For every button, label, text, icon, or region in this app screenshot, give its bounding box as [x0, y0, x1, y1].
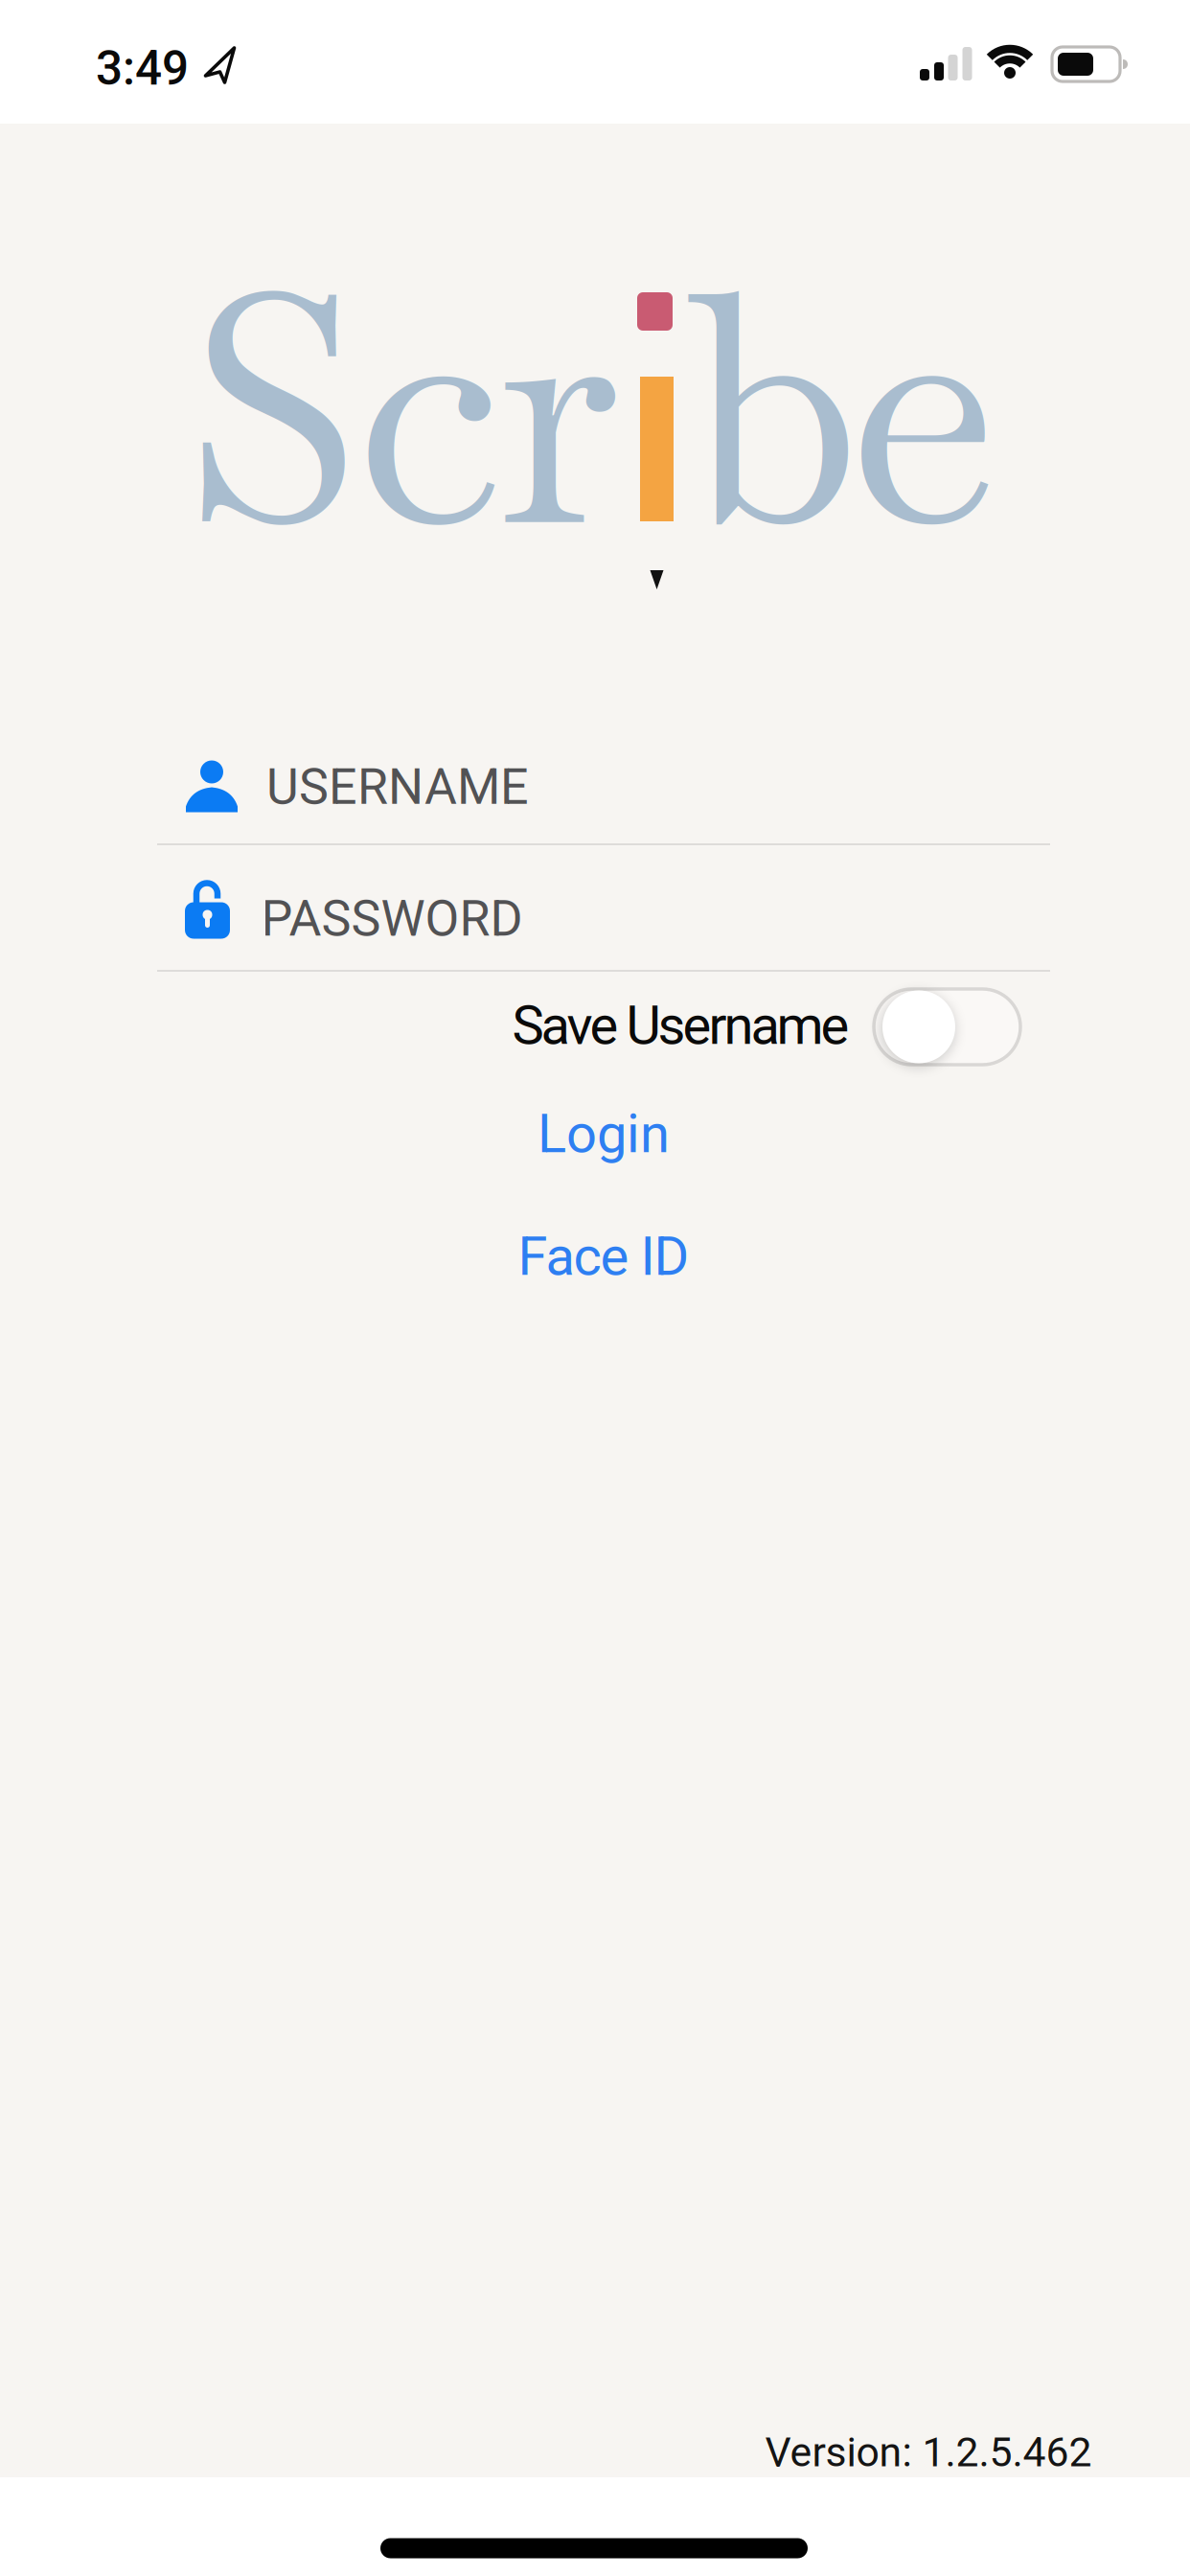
- staticText: Save Username: [512, 994, 849, 1057]
- button[interactable]: USERNAME: [157, 719, 1050, 844]
- staticText: Face ID: [518, 1225, 689, 1288]
- button[interactable]: Save Username: [508, 979, 1035, 1073]
- staticText: Login: [538, 1102, 670, 1165]
- staticText: 3:49: [96, 41, 189, 96]
- button[interactable]: Login: [518, 1091, 689, 1177]
- button[interactable]: PASSWORD: [157, 844, 1050, 971]
- button[interactable]: Face ID: [499, 1213, 709, 1299]
- staticText: be: [685, 202, 999, 615]
- staticText: USERNAME: [266, 758, 529, 816]
- staticText: PASSWORD: [261, 889, 523, 948]
- staticText: Scr: [183, 202, 622, 615]
- staticText: Version: 1.2.5.462: [765, 2428, 1092, 2476]
